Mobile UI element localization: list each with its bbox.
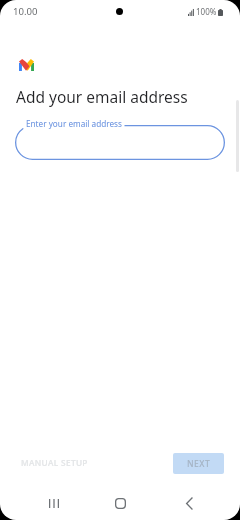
staticText: Add your email address [16,86,188,107]
staticText: 100% [196,6,217,17]
staticText: NEXT [187,458,211,470]
button[interactable]: Recent apps [37,487,70,520]
staticText: MANUAL SETUP [21,457,88,468]
button[interactable]: NEXT [173,453,224,474]
staticText: 10.00 [13,5,38,18]
button[interactable]: Back [172,487,205,520]
button[interactable]: Enter your email address [15,125,225,160]
staticText: Enter your email address [26,118,122,129]
button[interactable]: Home [104,487,137,520]
button[interactable]: MANUAL SETUP [13,452,96,473]
